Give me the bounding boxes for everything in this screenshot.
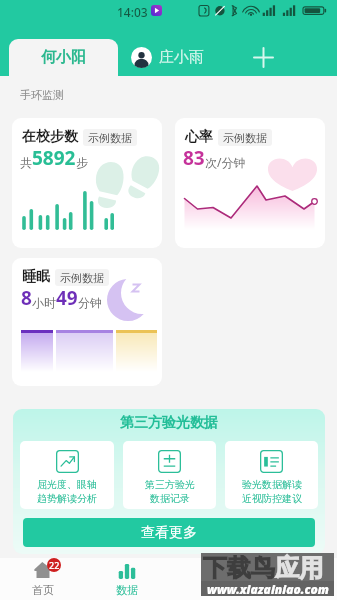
staticText: 示例数据 — [88, 131, 132, 145]
button[interactable]: 22 — [0, 558, 85, 600]
staticText: www.xiazainiao.com — [207, 581, 329, 596]
staticText: 14:03 — [117, 4, 148, 20]
staticText: 分钟 — [78, 295, 102, 310]
staticText: 83 — [183, 145, 205, 171]
button[interactable]: 在校步数 — [12, 118, 162, 248]
staticText: 睡眠 — [22, 268, 50, 286]
staticText: 示例数据 — [60, 271, 104, 285]
staticText: 心率 — [185, 128, 213, 146]
staticText: 第三方验光 — [145, 478, 195, 491]
button[interactable]: 睡眠 — [12, 258, 162, 386]
staticText: 近视防控建议 — [242, 492, 302, 505]
staticText: 屈光度、眼轴 — [37, 478, 97, 491]
staticText: 在校步数 — [22, 128, 78, 146]
staticText: 次/分钟 — [205, 154, 246, 170]
button[interactable]: 第三方验光 — [123, 441, 216, 509]
staticText: 49 — [56, 285, 78, 311]
button[interactable]: 屈光度、眼轴 — [20, 441, 114, 509]
staticText: 手环监测 — [20, 88, 64, 102]
staticText: 第三方验光数据 — [120, 414, 218, 432]
button[interactable]: 查看更多 — [23, 518, 315, 547]
staticText: 8 — [21, 285, 32, 311]
staticText: 趋势解读分析 — [37, 492, 97, 505]
staticText: 数据 — [116, 583, 138, 597]
staticText: 验光数据解读 — [242, 478, 302, 491]
staticText: 数据记录 — [150, 492, 190, 505]
staticText: 应用 — [275, 553, 323, 583]
button[interactable]: 心率 — [175, 118, 325, 248]
button[interactable]: 数据 — [85, 558, 169, 600]
staticText: 5892 — [32, 145, 76, 171]
staticText: 小时 — [32, 295, 56, 310]
staticText: 下载鸟 — [203, 553, 275, 583]
staticText: 首页 — [32, 583, 54, 597]
button[interactable]: 何小阳 — [9, 39, 118, 76]
staticText: 何小阳 — [41, 48, 86, 67]
button[interactable]: 庄小雨 — [131, 39, 204, 76]
staticText: 22 — [49, 559, 60, 571]
staticText: 查看更多 — [141, 524, 197, 542]
staticText: 庄小雨 — [159, 48, 204, 67]
staticText: 示例数据 — [223, 131, 267, 145]
staticText: 共 — [20, 155, 32, 170]
button[interactable]: 验光数据解读 — [225, 441, 318, 509]
button[interactable]: 添加 — [246, 39, 280, 76]
staticText: 步 — [76, 155, 88, 170]
